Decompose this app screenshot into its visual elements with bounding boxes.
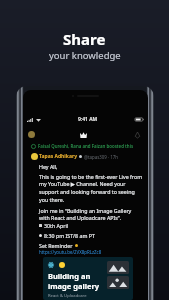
staticText: Building an <box>48 271 91 281</box>
staticText: image gallery <box>48 281 100 291</box>
staticText: React & Uploadcare <box>48 293 87 299</box>
staticText: @tapas309 · 17h <box>84 154 118 160</box>
staticText: Join me in “Building an Image Gallery wi… <box>39 207 143 222</box>
button[interactable]: Home <box>78 129 89 140</box>
staticText: 8:30 pm IST/8 am PT <box>44 232 95 239</box>
staticText: 9:41 AM <box>78 116 98 123</box>
staticText: Hey All, <box>39 163 58 170</box>
staticText: Set Reminder <box>39 242 73 249</box>
staticText: Faisal Qureshi, Rana and Faizan boosted … <box>38 143 147 149</box>
staticText: This is going to be the first-ever Live … <box>39 173 143 204</box>
button[interactable]: Settings <box>132 129 143 140</box>
staticText: https://youtu.be/2VX8pRLzZc8 <box>39 249 102 255</box>
staticText: Share <box>63 29 106 49</box>
button[interactable]: Open video <box>43 257 133 300</box>
staticText: Tapas Adhikary <box>39 153 77 160</box>
staticText: your knowledge <box>49 49 121 62</box>
staticText: 30th April <box>44 222 69 229</box>
button[interactable]: Profile <box>28 131 35 138</box>
